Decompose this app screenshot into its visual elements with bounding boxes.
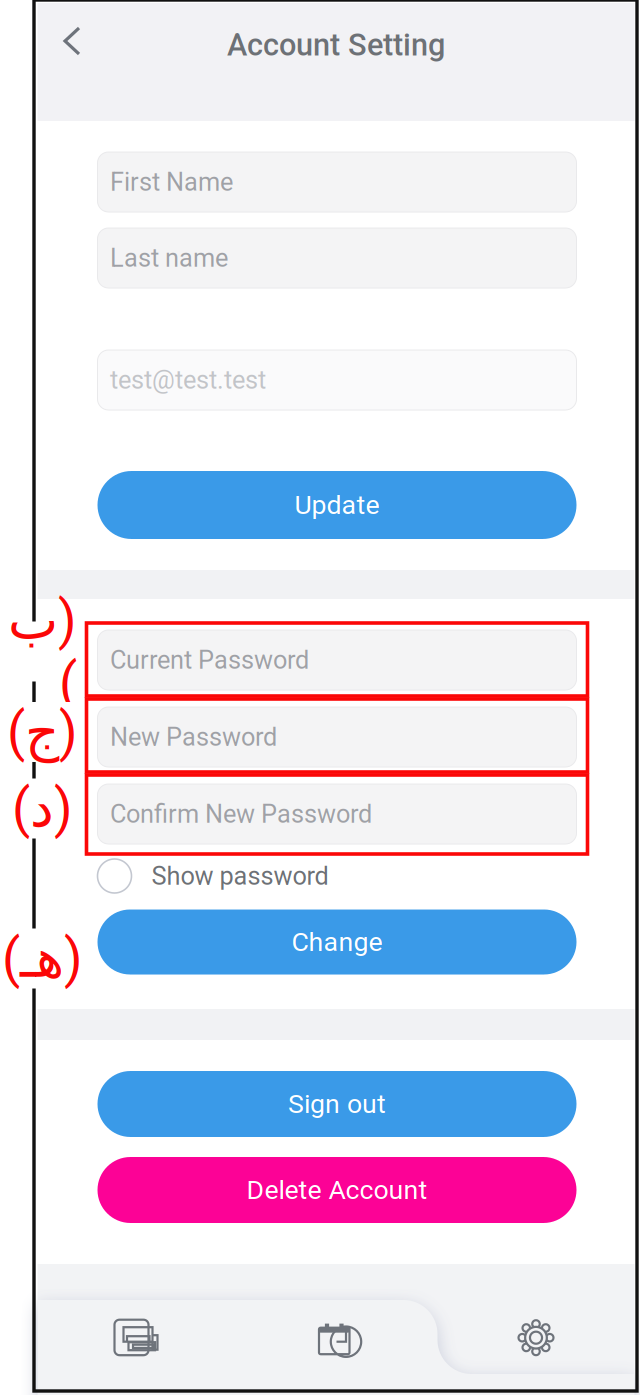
staticText: Last name bbox=[110, 243, 228, 273]
staticText: Account Setting bbox=[227, 27, 445, 63]
button[interactable]: Documents bbox=[84, 1288, 187, 1388]
staticText: (د) bbox=[11, 777, 72, 840]
staticText: (هـ) bbox=[1, 927, 82, 990]
button[interactable]: Back bbox=[47, 10, 97, 72]
button[interactable]: Show password bbox=[97, 855, 576, 897]
staticText: Change bbox=[291, 926, 382, 958]
button[interactable]: Current Password bbox=[97, 630, 576, 690]
button[interactable]: Confirm New Password bbox=[97, 784, 576, 844]
button[interactable]: Sign out bbox=[97, 1071, 576, 1137]
button[interactable]: test@test.test bbox=[97, 350, 576, 410]
staticText: test@test.test bbox=[110, 365, 266, 395]
button[interactable]: Change bbox=[97, 909, 576, 974]
button[interactable]: New Password bbox=[97, 707, 576, 767]
staticText: Confirm New Password bbox=[110, 799, 372, 829]
button[interactable]: Update bbox=[97, 471, 576, 539]
staticText: First Name bbox=[110, 167, 233, 197]
button[interactable]: Last name bbox=[97, 228, 576, 288]
staticText: Show password bbox=[151, 861, 328, 891]
staticText: Delete Account bbox=[246, 1174, 427, 1206]
staticText: Current Password bbox=[110, 645, 309, 675]
staticText: (ج) bbox=[6, 701, 77, 763]
button[interactable]: Delete Account bbox=[97, 1157, 576, 1223]
button[interactable]: Schedule bbox=[284, 1288, 387, 1388]
button[interactable]: First Name bbox=[97, 152, 576, 212]
staticText: New Password bbox=[110, 722, 277, 752]
staticText: (ب) bbox=[7, 589, 76, 714]
staticText: Update bbox=[294, 489, 379, 521]
staticText: Sign out bbox=[288, 1088, 386, 1120]
button[interactable]: Settings bbox=[484, 1288, 587, 1387]
